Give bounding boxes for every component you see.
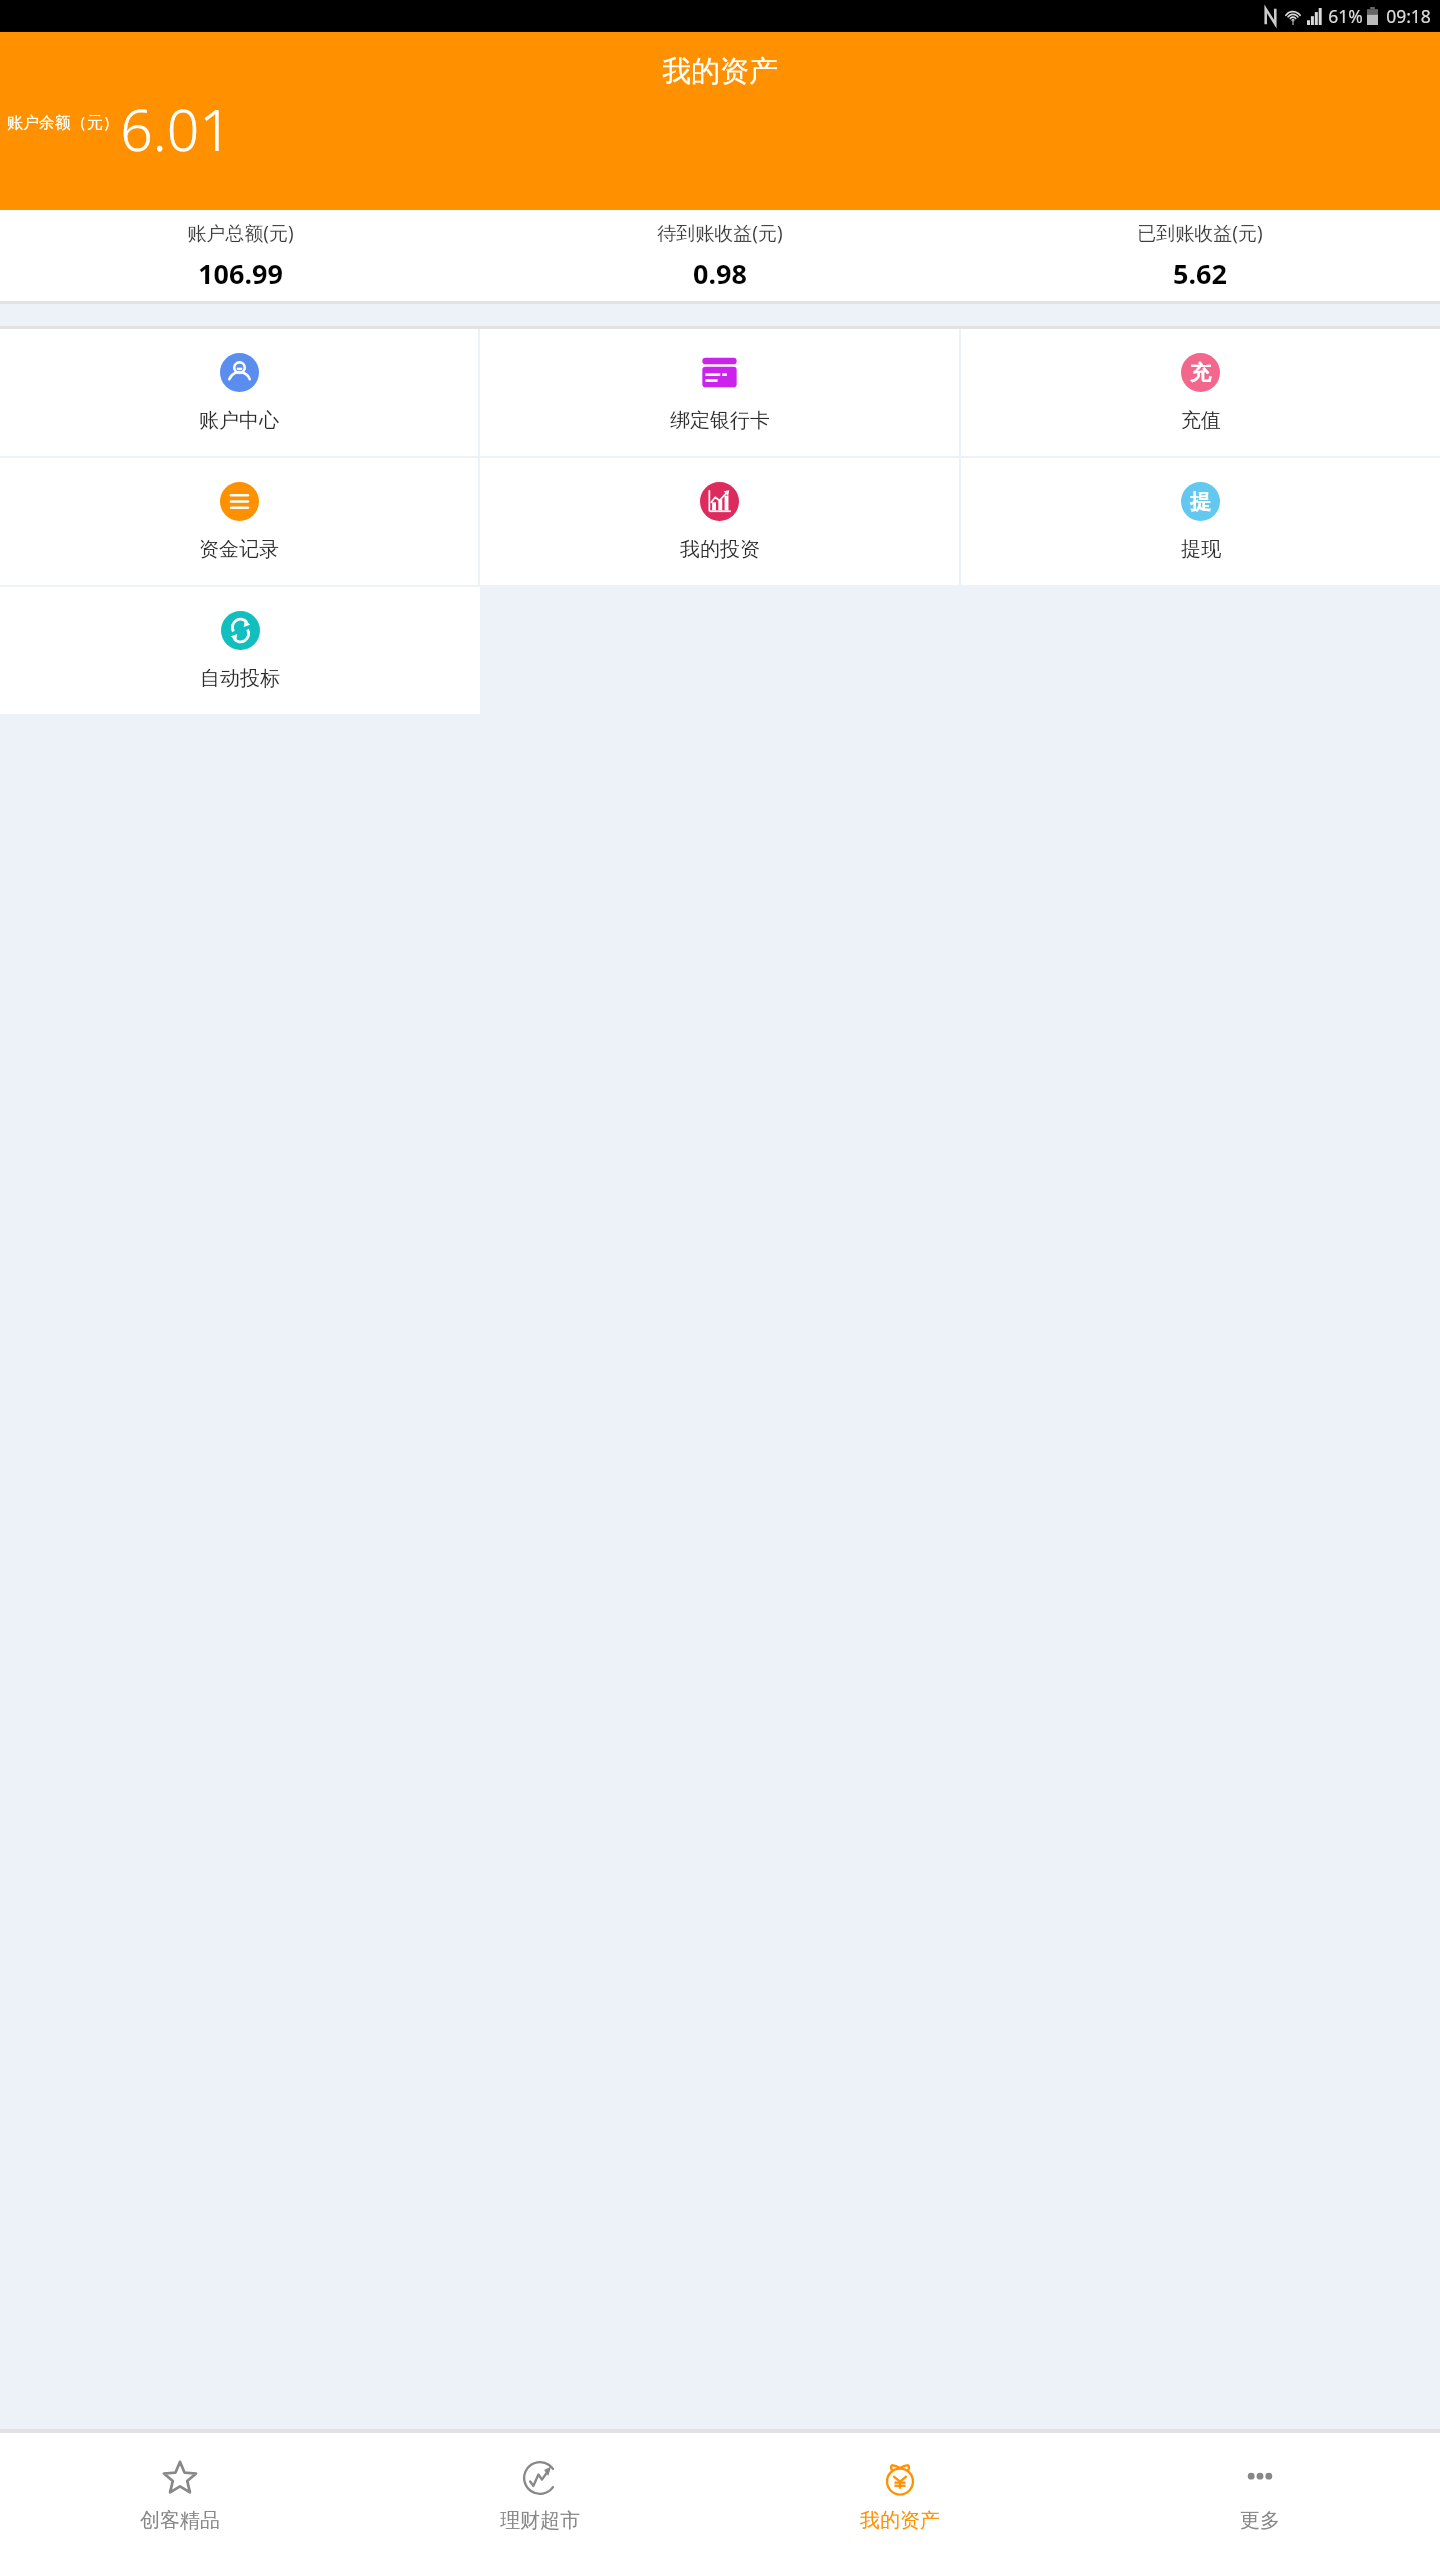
staticText: 充值 <box>1181 408 1221 433</box>
other: 自动投标 <box>221 611 260 650</box>
staticText: 更多 <box>1240 2508 1280 2533</box>
button[interactable]: 待到账收益(元) <box>480 220 960 292</box>
other: 我的投资 <box>700 482 739 521</box>
staticText: 提 <box>1190 489 1211 515</box>
staticText: 账户余额（元） <box>7 113 119 133</box>
staticText: 提现 <box>1181 537 1221 562</box>
staticText: 5.62 <box>1173 255 1227 292</box>
staticText: 创客精品 <box>140 2508 220 2533</box>
button[interactable]: 绑定银行卡 <box>480 329 959 456</box>
staticText: 待到账收益(元) <box>657 220 783 246</box>
staticText: 09:18 <box>1386 4 1431 28</box>
staticText: 106.99 <box>198 255 283 292</box>
other: 理财超市 <box>522 2460 558 2496</box>
staticText: 6.01 <box>120 90 232 168</box>
button[interactable]: 更多 <box>1080 2433 1440 2560</box>
button[interactable]: 自动投标 <box>0 587 480 714</box>
button[interactable]: 充 <box>961 329 1440 456</box>
staticText: 自动投标 <box>200 666 280 691</box>
button[interactable]: 我的资产 <box>720 2433 1080 2560</box>
staticText: 我的投资 <box>680 537 760 562</box>
staticText: 充 <box>1190 360 1211 386</box>
button[interactable]: 账户总额(元) <box>0 220 480 292</box>
button[interactable]: 我的投资 <box>480 458 959 585</box>
staticText: 0.98 <box>693 255 747 292</box>
other: 资金记录 <box>220 482 259 521</box>
staticText: 我的资产 <box>662 53 778 90</box>
staticText: 61% <box>1328 4 1363 28</box>
staticText: 账户中心 <box>199 408 279 433</box>
other: 更多 <box>1242 2460 1278 2496</box>
other: 提 <box>1181 482 1220 521</box>
staticText: 我的资产 <box>860 2508 940 2533</box>
button[interactable]: 账户中心 <box>0 329 478 456</box>
other: 账户中心 <box>220 353 259 392</box>
other: 绑定银行卡 <box>700 353 739 392</box>
staticText: 资金记录 <box>199 537 279 562</box>
staticText: 账户总额(元) <box>187 220 294 246</box>
other: 我的资产 <box>882 2460 918 2496</box>
button[interactable]: 提 <box>961 458 1440 585</box>
other: 创客精品 <box>162 2460 198 2496</box>
staticText: 理财超市 <box>500 2508 580 2533</box>
staticText: 已到账收益(元) <box>1137 220 1263 246</box>
button[interactable]: 创客精品 <box>0 2433 360 2560</box>
staticText: 绑定银行卡 <box>670 408 770 433</box>
other: 充 <box>1181 353 1220 392</box>
button[interactable]: 已到账收益(元) <box>960 220 1440 292</box>
button[interactable]: 理财超市 <box>360 2433 720 2560</box>
button[interactable]: 资金记录 <box>0 458 478 585</box>
